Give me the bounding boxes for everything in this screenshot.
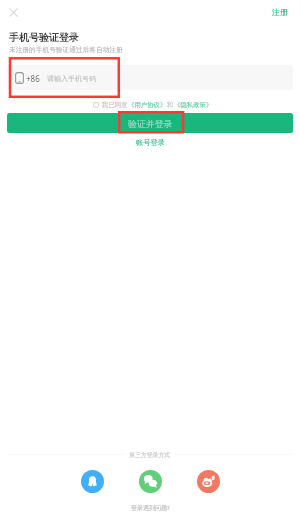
button[interactable]: 《隐私政策》 xyxy=(174,101,213,109)
staticText: 登录遇到问题? xyxy=(131,504,170,512)
staticText: 第三方登录方式 xyxy=(129,451,171,458)
button[interactable]: Login with WeChat xyxy=(139,470,162,493)
button[interactable]: 账号登录 xyxy=(128,136,173,149)
button[interactable]: 注册 xyxy=(264,2,296,22)
staticText: 和 xyxy=(167,101,174,109)
button[interactable]: Login with QQ xyxy=(81,470,104,493)
button[interactable]: +86 xyxy=(7,65,293,90)
staticText: 请输入手机号码 xyxy=(47,74,96,83)
staticText: 验证并登录 xyxy=(128,118,173,129)
button[interactable]: 登录遇到问题? xyxy=(123,502,178,514)
button[interactable]: 验证并登录 xyxy=(7,113,293,133)
staticText: 手机号验证登录 xyxy=(9,31,79,44)
button[interactable]: Agree to terms xyxy=(90,99,102,111)
button[interactable]: Login with Weibo xyxy=(197,470,220,493)
staticText: 账号登录 xyxy=(136,138,165,147)
button[interactable]: 《用户协议》 xyxy=(128,101,167,109)
button[interactable]: Close xyxy=(4,3,23,22)
staticText: 我已同意 xyxy=(102,101,128,109)
staticText: 未注册的手机号验证通过后将自动注册 xyxy=(9,46,123,54)
staticText: 注册 xyxy=(272,7,288,17)
staticText: +86 xyxy=(26,73,40,84)
